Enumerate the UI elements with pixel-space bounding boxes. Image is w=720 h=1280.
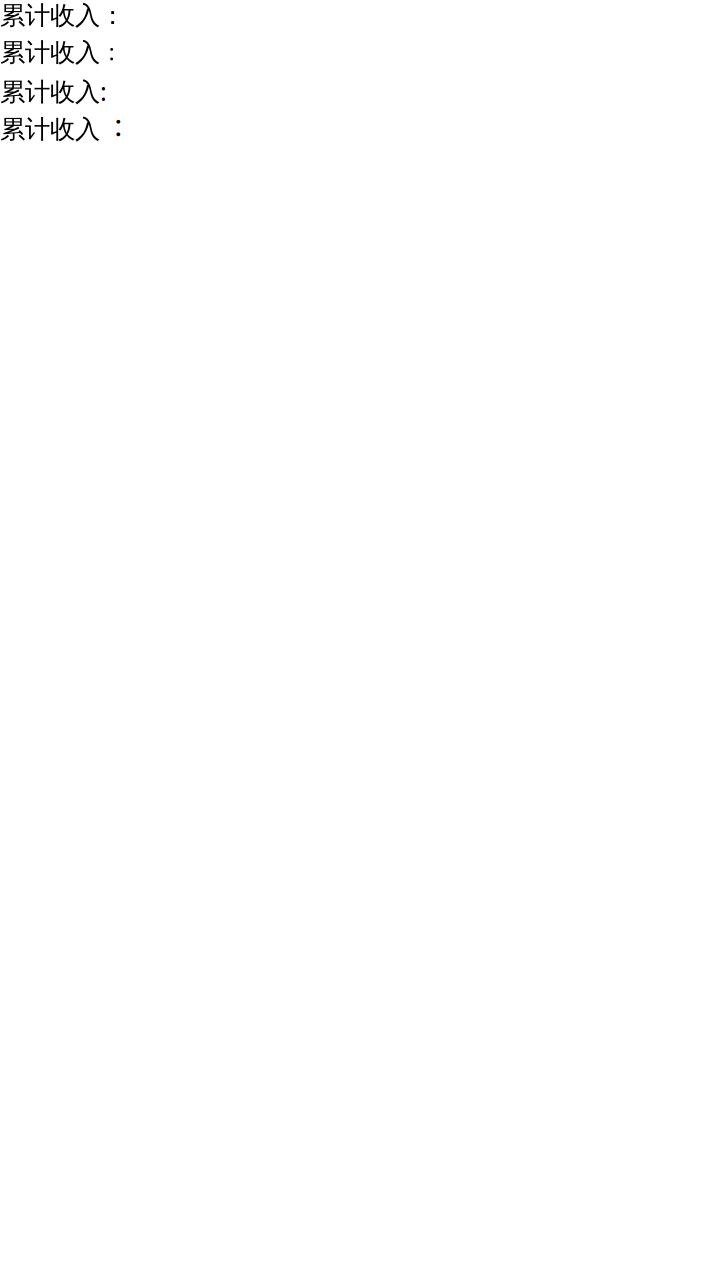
staticText: 累计收入： <box>0 0 125 31</box>
staticText: 累计收入︓ <box>0 114 125 145</box>
staticText: 累计收入: <box>0 74 107 108</box>
staticText: 累计收入﹕ <box>0 37 125 68</box>
